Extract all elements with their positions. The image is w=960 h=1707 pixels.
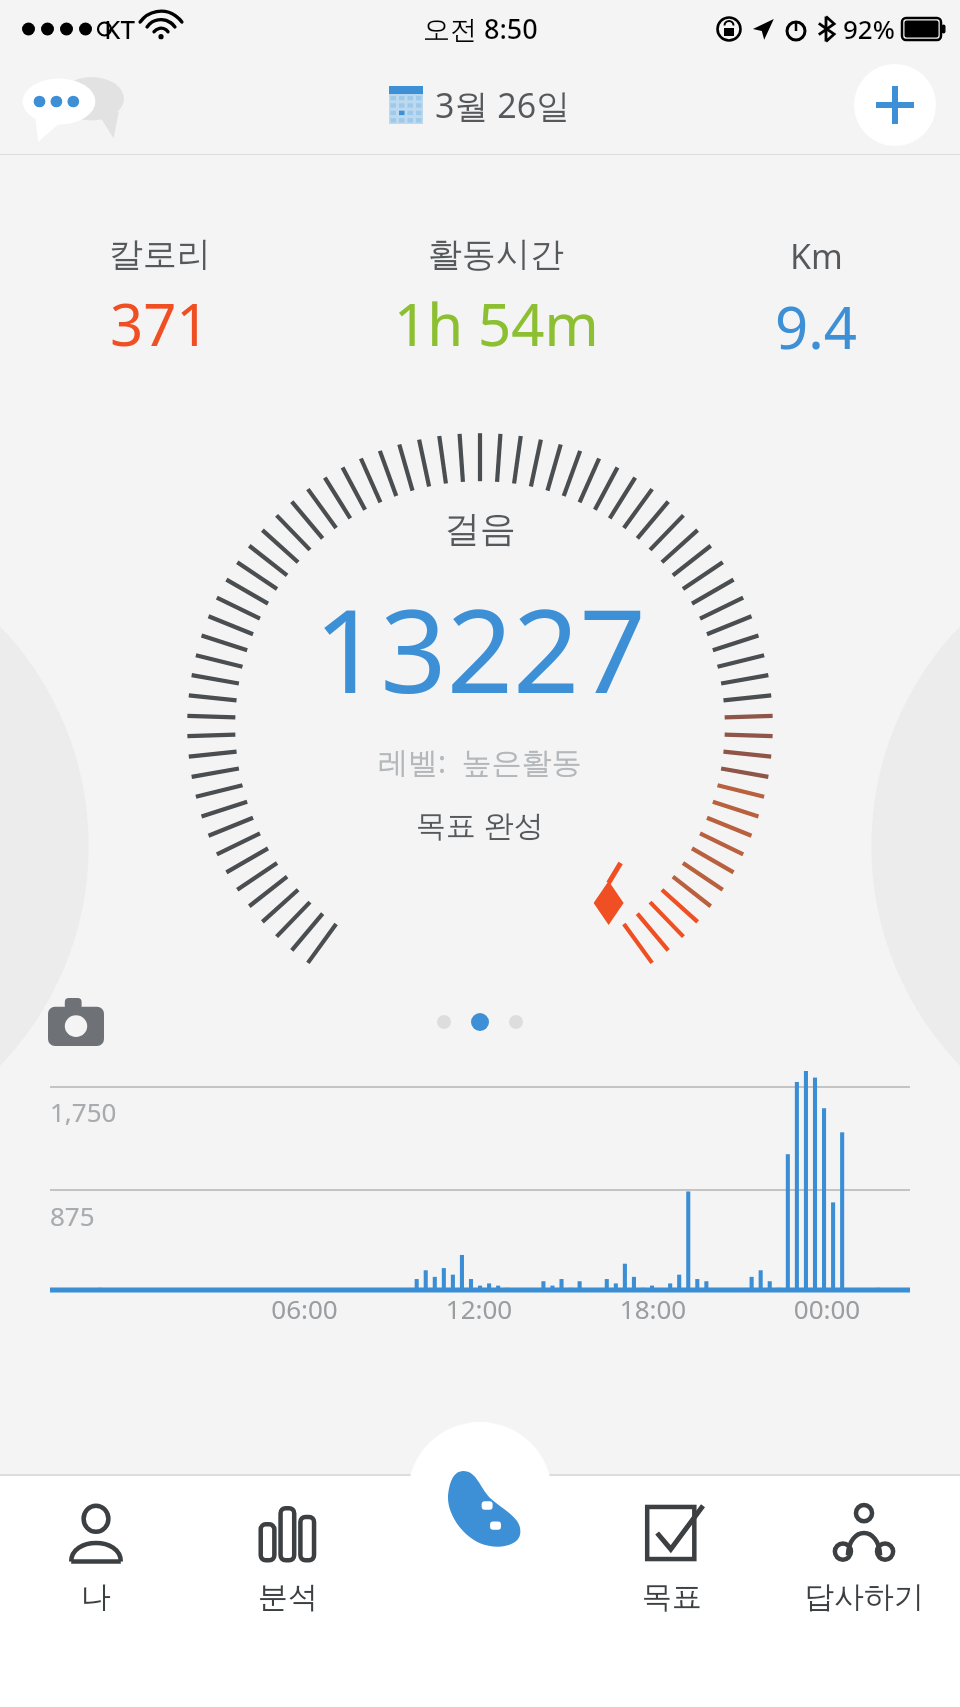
button[interactable]: Messages (20, 70, 150, 140)
staticText: 칼로리 (109, 233, 211, 276)
staticText: 92% (843, 11, 895, 46)
button[interactable]: 나 (0, 1488, 192, 1674)
staticText: 00:00 (740, 1291, 914, 1326)
button[interactable]: 3월 26일 (389, 82, 571, 128)
button[interactable]: 답사하기 (768, 1488, 960, 1674)
staticText: 레벨: 높은활동 (378, 741, 582, 782)
staticText: 나 (81, 1578, 111, 1616)
staticText: 답사하기 (804, 1578, 924, 1616)
staticText: 06:00 (217, 1291, 392, 1326)
button[interactable]: Camera (48, 998, 104, 1046)
staticText: 걸음 (444, 506, 516, 551)
staticText: 371 (110, 284, 210, 363)
staticText: 18:00 (566, 1291, 740, 1326)
button[interactable]: Steps (408, 1422, 552, 1566)
staticText: 12:00 (392, 1291, 566, 1326)
staticText: 3월 26일 (435, 82, 571, 128)
staticText: KT (104, 11, 136, 46)
button[interactable]: 칼로리 (0, 233, 320, 363)
button[interactable]: Km (672, 233, 960, 366)
staticText: 9.4 (775, 287, 857, 366)
button[interactable]: Add (854, 64, 936, 146)
staticText: 1,750 (50, 1094, 117, 1129)
staticText: Km (790, 233, 843, 279)
staticText: 분석 (258, 1578, 318, 1616)
button[interactable]: 목표 (576, 1488, 768, 1674)
staticText: 활동시간 (428, 233, 564, 276)
staticText: 875 (50, 1198, 95, 1233)
staticText: 목표 (642, 1578, 702, 1616)
button[interactable]: 분석 (192, 1488, 384, 1674)
staticText: 목표 완성 (416, 804, 544, 845)
staticText: 13227 (314, 569, 646, 727)
staticText: 1h 54m (394, 284, 599, 363)
staticText: 오전 8:50 (423, 10, 538, 47)
button[interactable]: 활동시간 (320, 233, 672, 363)
